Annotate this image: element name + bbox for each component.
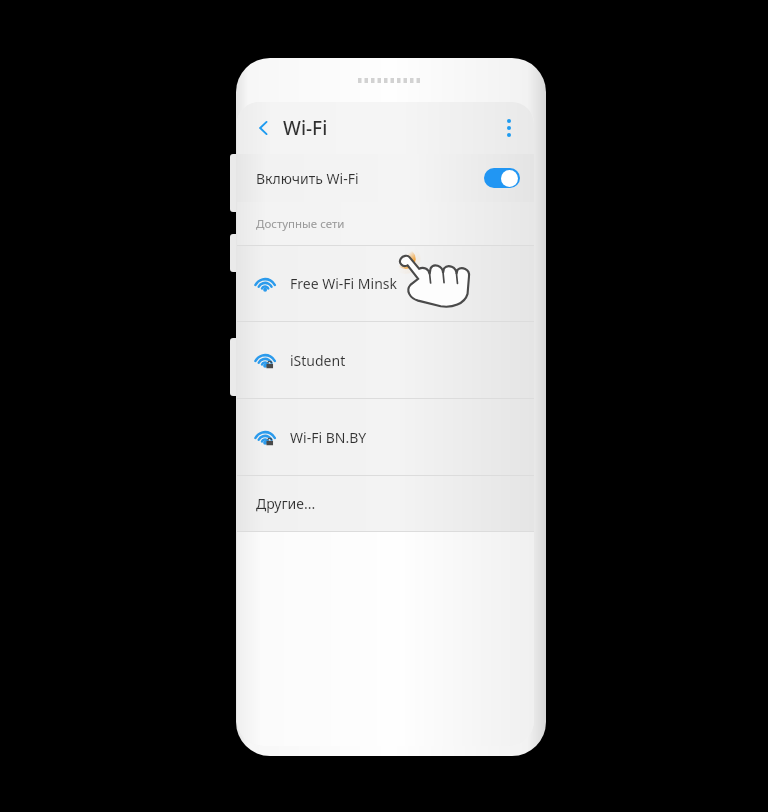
button[interactable]: Включить Wi-Fi bbox=[237, 154, 534, 202]
staticText: iStudent bbox=[290, 351, 346, 370]
button[interactable]: More options bbox=[492, 111, 526, 145]
staticText: Включить Wi-Fi bbox=[256, 169, 359, 188]
button[interactable]: Back bbox=[249, 113, 279, 143]
staticText: Wi-Fi BN.BY bbox=[290, 428, 367, 447]
button[interactable]: Wi-Fi BN.BY bbox=[237, 399, 534, 475]
button[interactable]: Free Wi-Fi Minsk bbox=[237, 246, 534, 321]
staticText: Free Wi-Fi Minsk bbox=[290, 274, 398, 293]
button[interactable]: Wi-Fi toggle bbox=[484, 168, 520, 188]
button[interactable]: Другие... bbox=[237, 476, 534, 531]
staticText: Wi-Fi bbox=[283, 115, 328, 141]
button[interactable]: iStudent bbox=[237, 322, 534, 398]
staticText: Другие... bbox=[256, 494, 316, 513]
staticText: Доступные сети bbox=[256, 216, 345, 232]
